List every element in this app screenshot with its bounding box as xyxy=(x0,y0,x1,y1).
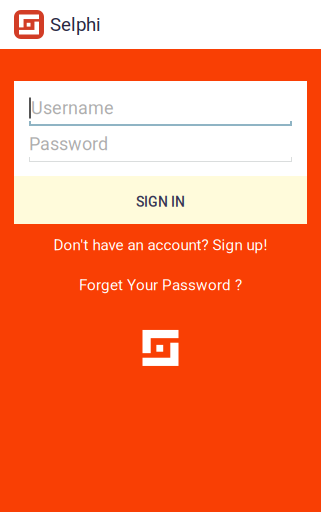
staticText: Selphi xyxy=(50,14,101,35)
staticText: Don't have an account? Sign up! xyxy=(53,236,267,254)
button[interactable]: Don't have an account? Sign up! xyxy=(43,232,277,258)
button[interactable]: Password xyxy=(29,131,292,162)
staticText: Password xyxy=(29,133,108,155)
staticText: SIGN IN xyxy=(136,194,185,210)
staticText: Username xyxy=(31,97,114,119)
button[interactable]: Forget Your Password ? xyxy=(69,272,252,298)
staticText: Forget Your Password ? xyxy=(79,276,242,294)
button[interactable]: Username xyxy=(29,95,292,126)
button[interactable]: Selphi home xyxy=(14,10,44,39)
button[interactable]: SIGN IN xyxy=(14,176,307,224)
